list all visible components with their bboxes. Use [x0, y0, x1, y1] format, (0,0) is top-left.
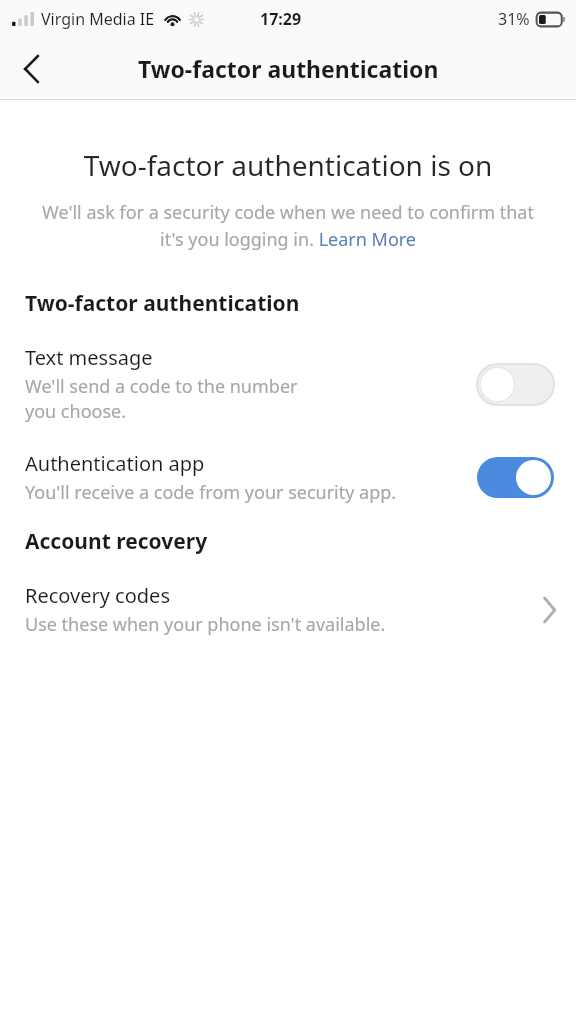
button[interactable]: Toggle off [477, 364, 554, 405]
staticText: Two-factor authentication [25, 289, 300, 318]
staticText: 17:29 [260, 8, 302, 30]
staticText: Use these when your phone isn't availabl… [25, 612, 386, 637]
staticText: We'll ask for a security code when we ne… [32, 200, 544, 251]
staticText: Account recovery [25, 527, 208, 556]
button[interactable]: Authentication app [0, 450, 576, 505]
button[interactable]: Text message [0, 344, 576, 424]
staticText: We'll send a code to the number [25, 374, 298, 399]
staticText: Recovery codes [25, 582, 170, 609]
staticText: Text message [25, 344, 153, 371]
button[interactable]: Back [5, 43, 57, 95]
staticText: Two-factor authentication [138, 53, 439, 84]
staticText: you choose. [25, 399, 127, 424]
staticText: Two-factor authentication is on [20, 146, 556, 184]
staticText: 31% [498, 8, 530, 30]
staticText: Virgin Media IE [41, 8, 155, 30]
button[interactable]: Toggle on [477, 457, 554, 498]
button[interactable]: Recovery codes [0, 582, 576, 637]
staticText: You'll receive a code from your security… [25, 480, 397, 505]
staticText: Authentication app [25, 450, 205, 477]
